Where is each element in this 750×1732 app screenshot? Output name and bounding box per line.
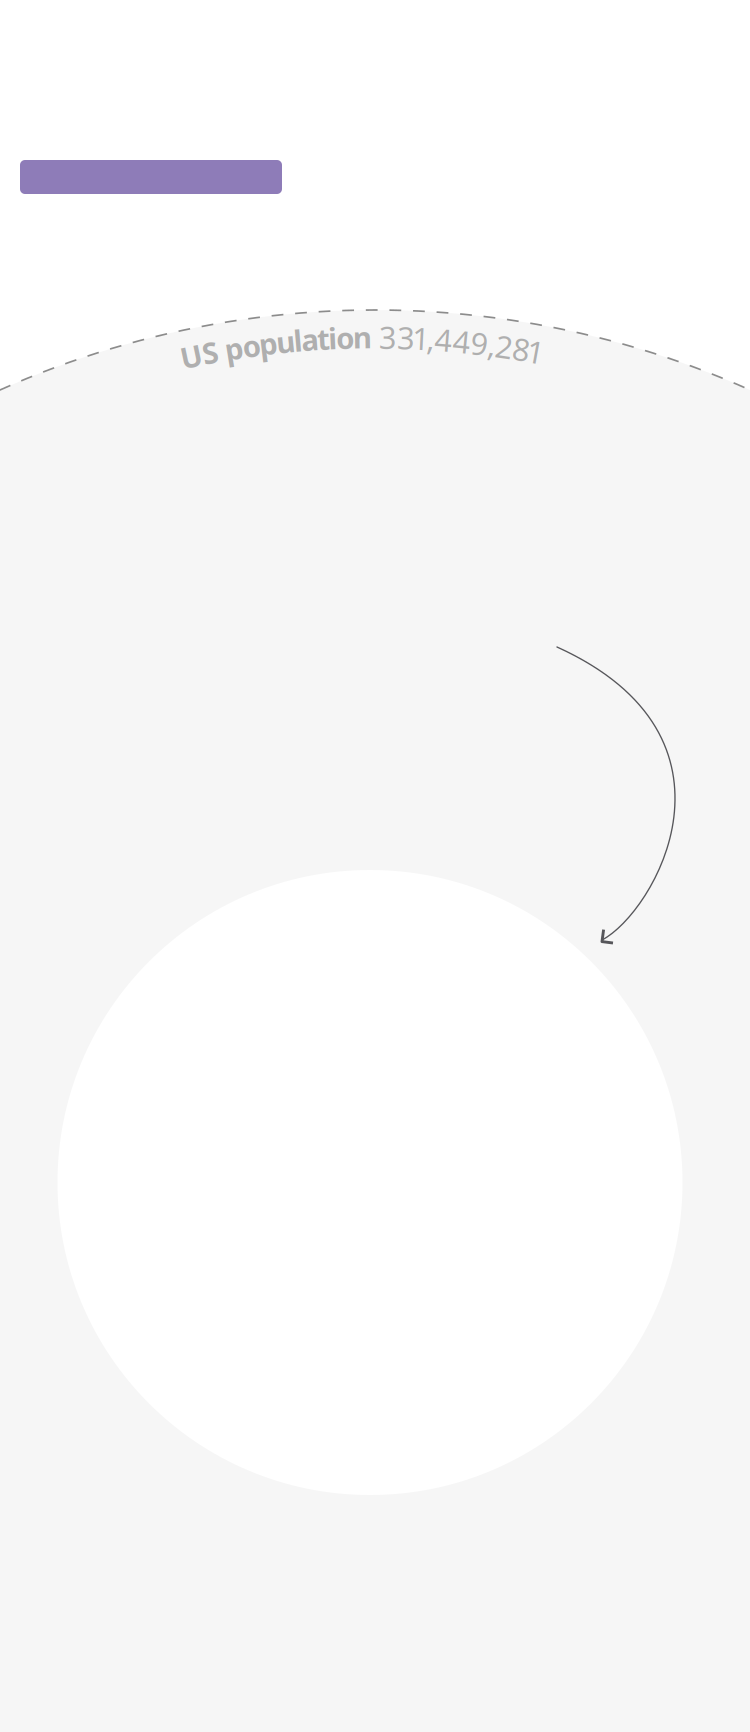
- staticText: p: [259, 324, 278, 363]
- staticText: 4: [435, 319, 453, 360]
- staticText: 2: [495, 326, 513, 367]
- button[interactable]: US population: [20, 160, 282, 194]
- staticText: 3: [397, 317, 415, 358]
- staticText: 8: [512, 329, 530, 369]
- staticText: U: [180, 337, 202, 376]
- staticText: p: [225, 329, 244, 368]
- staticText: 1: [412, 318, 430, 358]
- staticText: i: [328, 318, 337, 357]
- staticText: ,: [488, 324, 496, 365]
- staticText: t: [317, 319, 330, 358]
- staticText: 9: [471, 323, 489, 363]
- staticText: o: [242, 326, 260, 365]
- staticText: a: [301, 320, 319, 359]
- staticText: S: [202, 333, 218, 372]
- staticText: o: [336, 318, 354, 357]
- staticText: l: [294, 321, 303, 360]
- staticText: u: [276, 322, 295, 361]
- staticText: ,: [427, 318, 435, 359]
- staticText: 1: [527, 331, 545, 372]
- staticText: 4: [453, 321, 471, 362]
- staticText: n: [353, 318, 372, 357]
- staticText: 3: [379, 317, 397, 357]
